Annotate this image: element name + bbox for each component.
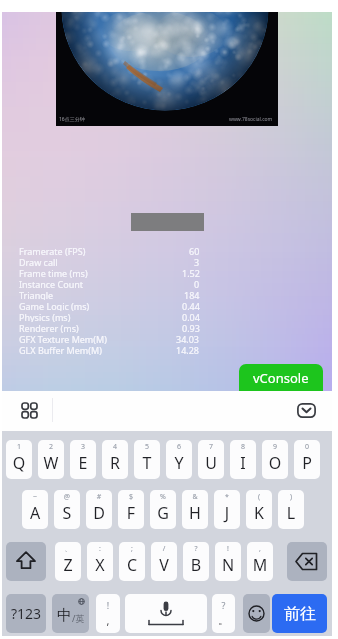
button[interactable]: ?123 [6, 594, 46, 633]
button[interactable]: ; [119, 542, 145, 581]
staticText: G [150, 502, 176, 524]
staticText: vConsole [253, 369, 309, 387]
staticText: L [278, 502, 304, 524]
staticText: 3 [70, 442, 96, 452]
button[interactable]: # [86, 490, 112, 529]
button[interactable]: ? [183, 542, 209, 581]
staticText: J [214, 502, 240, 524]
staticText: & [182, 492, 208, 502]
staticText: 7 [198, 442, 224, 452]
staticText: Framerate (FPS) [19, 245, 86, 256]
button[interactable]: 前往 [272, 594, 327, 633]
button[interactable]: , [247, 542, 273, 581]
staticText: ~ [22, 492, 48, 502]
staticText: ? [212, 599, 235, 611]
button[interactable]: ( [246, 490, 272, 529]
staticText: / [151, 544, 177, 554]
staticText: ; [119, 544, 145, 554]
staticText: 0.04 [182, 311, 200, 322]
staticText: 0.44 [182, 300, 200, 311]
staticText: V [151, 554, 177, 576]
staticText: I [230, 452, 256, 474]
staticText: Frame time (ms) [19, 267, 88, 278]
staticText: 1 [6, 442, 32, 452]
staticText: , [247, 544, 273, 554]
button[interactable]: Emoji [243, 594, 270, 633]
staticText: F [118, 502, 144, 524]
button[interactable]: * [214, 490, 240, 529]
staticText: 9 [262, 442, 288, 452]
staticText: 前往 [284, 604, 316, 624]
staticText: C [119, 554, 145, 576]
staticText: , [96, 613, 120, 628]
staticText: ? [183, 544, 209, 554]
staticText: ( [246, 492, 272, 502]
staticText: 3 [194, 256, 200, 267]
button[interactable]: % [150, 490, 176, 529]
staticText: GLX Buffer Mem(M) [19, 344, 102, 355]
button[interactable]: ! [215, 542, 241, 581]
staticText: 34.03 [176, 333, 200, 344]
button[interactable]: @ [54, 490, 80, 529]
staticText: N [215, 554, 241, 576]
button[interactable]: 、 [55, 542, 81, 581]
button[interactable]: Space [125, 594, 207, 633]
staticText: 0.93 [182, 322, 200, 333]
staticText: 5 [134, 442, 160, 452]
button[interactable]: 3 [70, 440, 96, 479]
button[interactable]: ? [212, 594, 235, 633]
staticText: O [262, 452, 288, 474]
staticText: S [54, 502, 80, 524]
button[interactable]: 8 [230, 440, 256, 479]
button[interactable]: vConsole [239, 364, 323, 391]
button[interactable]: 0 [294, 440, 320, 479]
staticText: A [22, 502, 48, 524]
button[interactable]: 1 [6, 440, 32, 479]
staticText: GFX Texture Mem(M) [19, 333, 107, 344]
staticText: 2 [38, 442, 64, 452]
button[interactable]: 5 [134, 440, 160, 479]
staticText: 14.28 [176, 344, 200, 355]
button[interactable]: Backspace [287, 542, 327, 581]
button[interactable]: Shift [6, 542, 46, 581]
staticText: Renderer (ms) [19, 322, 79, 333]
staticText: K [246, 502, 272, 524]
staticText: Q [6, 452, 32, 474]
button[interactable]: 6 [166, 440, 192, 479]
staticText: 中 [57, 606, 72, 625]
button[interactable]: / [151, 542, 177, 581]
staticText: Draw call [19, 256, 58, 267]
button[interactable]: More options [8, 395, 50, 425]
button[interactable]: ! [96, 594, 120, 633]
button[interactable]: 2 [38, 440, 64, 479]
button[interactable]: 4 [102, 440, 128, 479]
staticText: Instance Count [19, 278, 84, 289]
button[interactable]: ~ [22, 490, 48, 529]
button[interactable]: $ [118, 490, 144, 529]
button[interactable]: : [87, 542, 113, 581]
button[interactable]: 7 [198, 440, 224, 479]
staticText: ! [96, 599, 120, 611]
staticText: 16点三分钟 [59, 116, 85, 123]
staticText: W [38, 452, 64, 474]
staticText: % [150, 492, 176, 502]
staticText: D [86, 502, 112, 524]
staticText: Y [166, 452, 192, 474]
staticText: 4 [102, 442, 128, 452]
staticText: Game Logic (ms) [19, 300, 90, 311]
staticText: ?123 [11, 604, 42, 623]
staticText: 0 [194, 278, 200, 289]
staticText: www.78social.com [229, 116, 273, 123]
staticText: X [87, 554, 113, 576]
button[interactable]: ) [278, 490, 304, 529]
staticText: 184 [184, 289, 200, 300]
staticText: : [87, 544, 113, 554]
staticText: 。 [212, 613, 235, 627]
button[interactable]: Hide keyboard [288, 395, 324, 425]
staticText: $ [118, 492, 144, 502]
button[interactable]: 9 [262, 440, 288, 479]
staticText: 6 [166, 442, 192, 452]
button[interactable]: 中 [52, 594, 89, 633]
button[interactable]: & [182, 490, 208, 529]
